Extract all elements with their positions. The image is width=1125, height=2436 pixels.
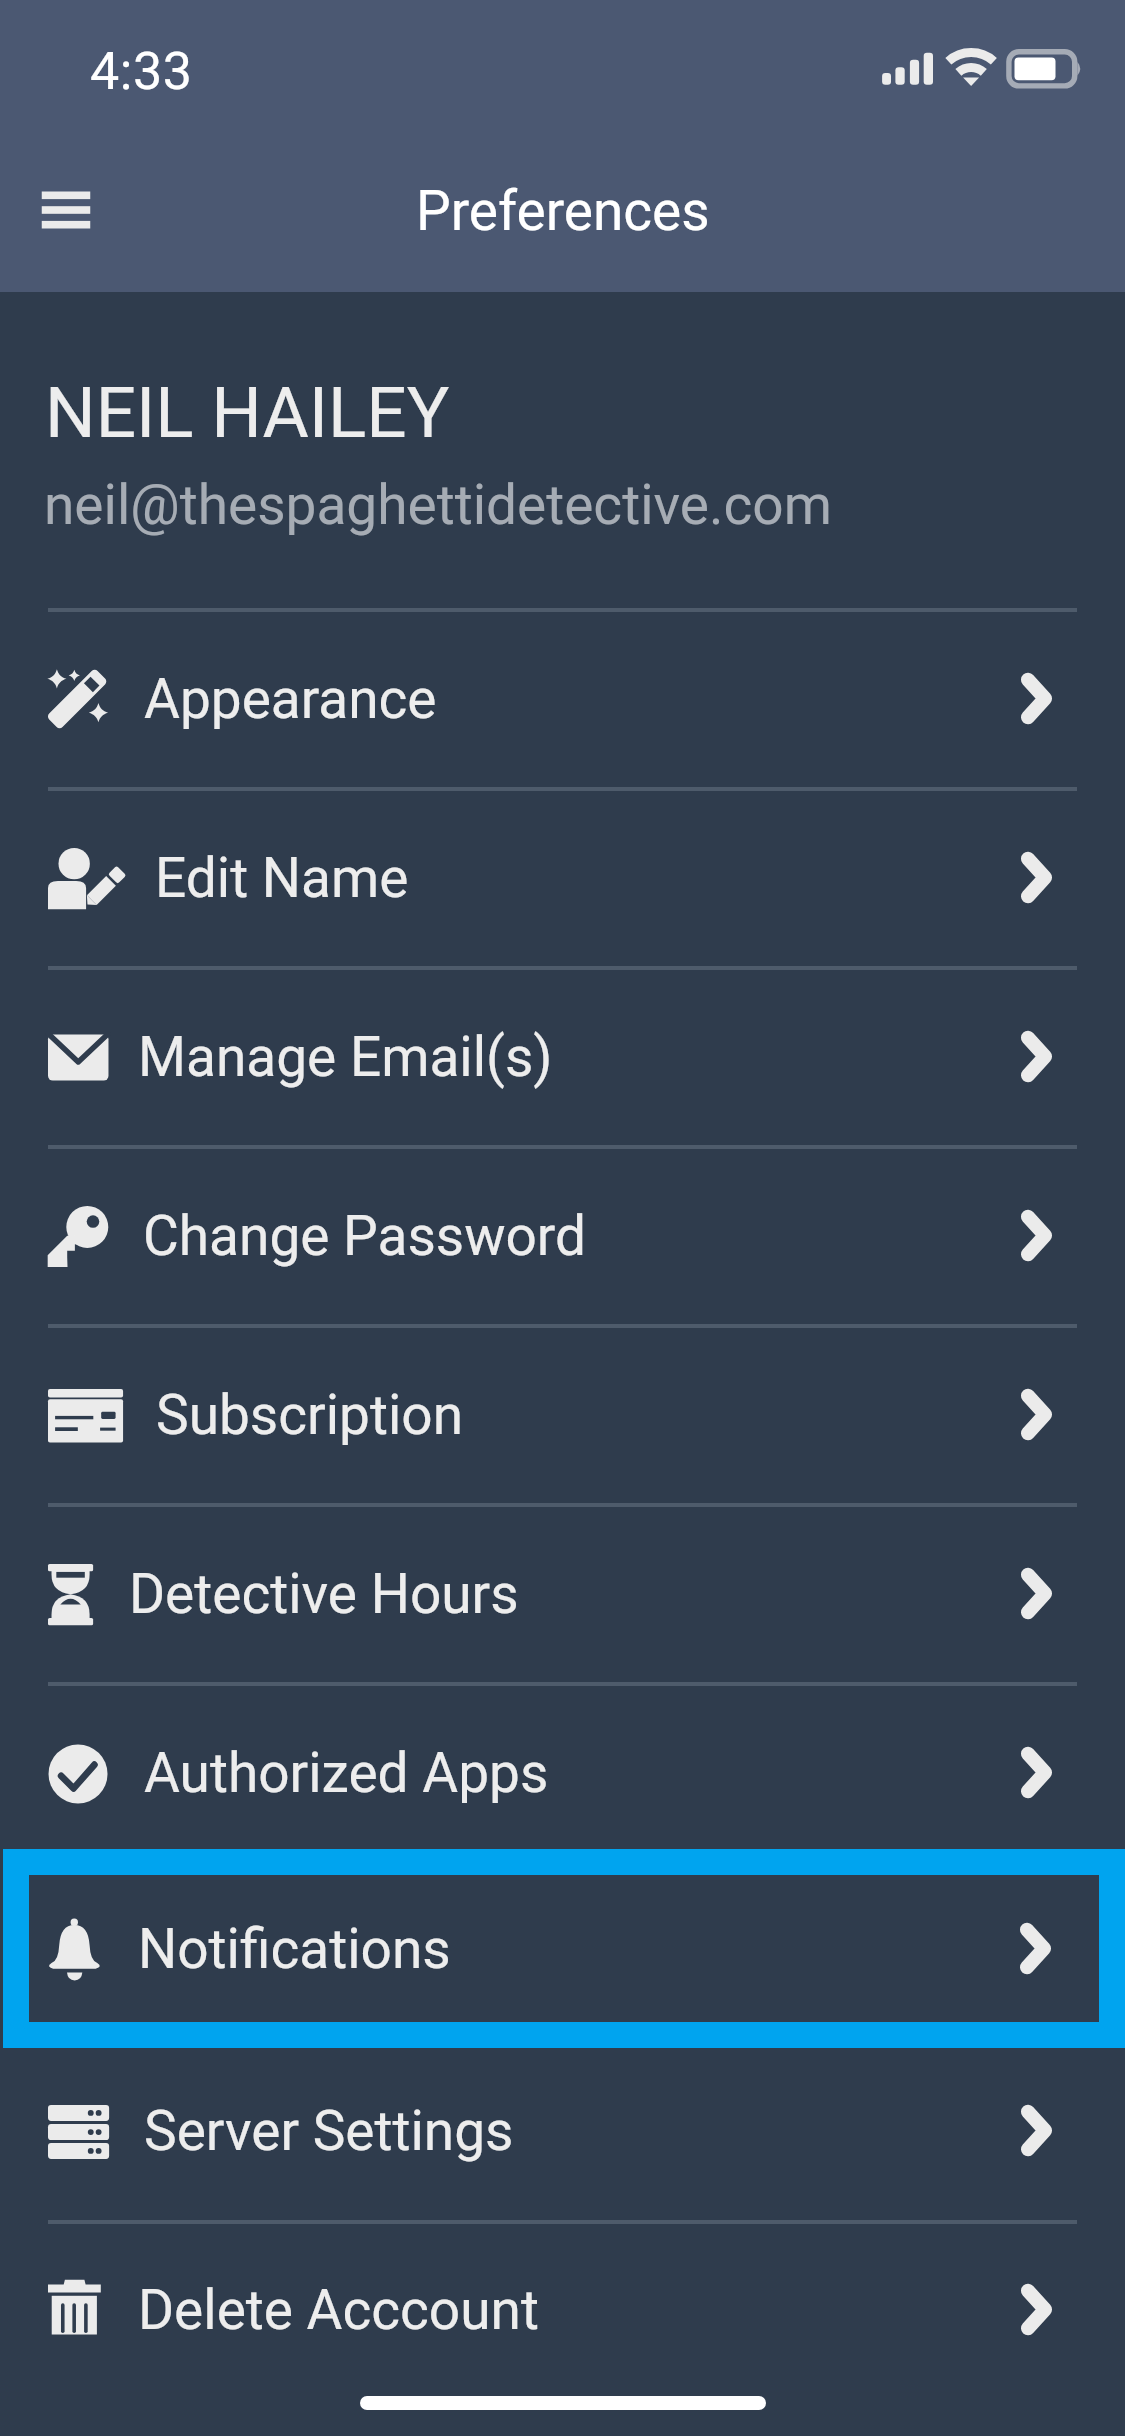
staticText: Edit Name xyxy=(155,846,409,910)
button[interactable]: Appearance xyxy=(0,609,1125,788)
button[interactable]: Delete Acccount xyxy=(0,2221,1125,2398)
staticText: Detective Hours xyxy=(129,1562,519,1626)
staticText: Appearance xyxy=(144,667,437,731)
staticText: NEIL HAILEY xyxy=(45,371,450,454)
button[interactable]: Notifications xyxy=(29,1875,1099,2022)
button[interactable]: Manage Email(s) xyxy=(0,967,1125,1146)
staticText: Manage Email(s) xyxy=(138,1025,553,1089)
staticText: Notifications xyxy=(138,1917,451,1981)
staticText: neil@thespaghettidetective.com xyxy=(44,473,832,537)
staticText: Change Password xyxy=(143,1204,587,1268)
button[interactable]: Subscription xyxy=(0,1325,1125,1504)
staticText: Preferences xyxy=(416,179,710,243)
staticText: Authorized Apps xyxy=(144,1741,549,1805)
button[interactable]: Authorized Apps xyxy=(0,1683,1125,1862)
staticText: 4:33 xyxy=(90,41,193,102)
button[interactable]: Server Settings xyxy=(0,2048,1125,2213)
button[interactable]: Open navigation menu xyxy=(20,164,112,256)
button[interactable]: Detective Hours xyxy=(0,1504,1125,1683)
staticText: Server Settings xyxy=(144,2099,514,2163)
button[interactable]: Edit Name xyxy=(0,788,1125,967)
staticText: Subscription xyxy=(156,1383,464,1447)
button[interactable]: Change Password xyxy=(0,1146,1125,1325)
staticText: Delete Acccount xyxy=(138,2278,539,2342)
